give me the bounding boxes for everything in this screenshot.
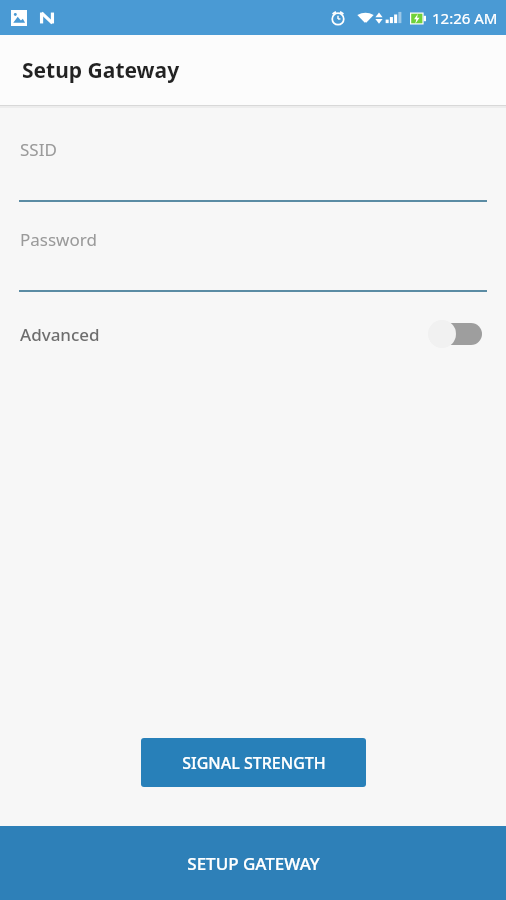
staticText: Password [20, 228, 97, 251]
staticText: Setup Gateway [22, 56, 180, 85]
button[interactable]: SSID [0, 138, 506, 202]
staticText: Advanced [20, 323, 100, 346]
button[interactable]: Advanced toggle [428, 319, 486, 349]
button[interactable]: Advanced [0, 306, 506, 362]
staticText: SETUP GATEWAY [187, 852, 320, 875]
staticText: SSID [20, 138, 57, 161]
button[interactable]: SETUP GATEWAY [0, 826, 506, 900]
button[interactable]: Password [0, 228, 506, 292]
button[interactable]: SIGNAL STRENGTH [141, 738, 366, 787]
staticText: 12:26 AM [432, 8, 498, 28]
staticText: SIGNAL STRENGTH [182, 752, 326, 774]
